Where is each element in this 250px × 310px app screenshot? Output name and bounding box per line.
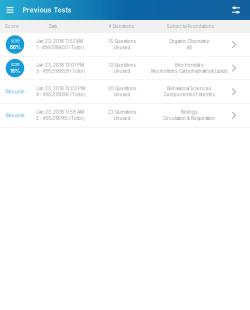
staticText: 16% — [10, 67, 20, 74]
staticText: 4 - #95319096 (Tutor) — [36, 92, 86, 97]
staticText: Unused — [113, 116, 130, 121]
staticText: Nucleotides, Carbohydrates & Lipids — [151, 68, 227, 74]
staticText: 86% — [9, 44, 20, 50]
staticText: 12 Questions — [108, 62, 135, 68]
staticText: Resume — [5, 112, 24, 118]
staticText: Circulation & Respiration — [163, 116, 215, 121]
staticText: 3 - #95318859 (Tutor) — [36, 68, 86, 74]
staticText: Organic Chemistry — [169, 39, 208, 44]
button[interactable]: Score — [0, 57, 250, 80]
staticText: Jan 23, 2018 12:03 PM — [36, 86, 85, 91]
button[interactable]: Resume — [0, 104, 250, 127]
staticText: Jan 23, 2018 11:57 AM — [36, 39, 83, 44]
staticText: Score — [10, 62, 19, 67]
staticText: 1 - #95318603 (Tutor) — [36, 45, 85, 50]
staticText: 2 - #95318745 (Tutor) — [36, 116, 85, 121]
staticText: Behavioral Sciences — [167, 86, 211, 91]
button[interactable]: Score — [0, 33, 250, 56]
staticText: Unused — [113, 92, 130, 97]
staticText: Unused — [113, 45, 130, 50]
staticText: Score — [10, 39, 19, 43]
staticText: Subjects/Foundations — [166, 24, 213, 29]
staticText: 22 Questions — [108, 110, 136, 115]
staticText: 15 Questions — [108, 39, 135, 44]
staticText: Score — [5, 24, 19, 29]
staticText: Date — [48, 24, 57, 29]
button[interactable]: Resume — [0, 80, 250, 103]
staticText: Resume — [5, 89, 24, 95]
staticText: Previous Tests — [22, 6, 71, 14]
staticText: All — [186, 45, 191, 50]
staticText: Jan 23, 2018 11:59 AM — [36, 110, 84, 115]
button[interactable]: Menu — [1, 0, 19, 20]
staticText: Components of Identity — [163, 92, 214, 97]
staticText: Unused — [113, 68, 130, 74]
staticText: Biology — [181, 110, 197, 115]
staticText: # Questions — [108, 24, 133, 29]
staticText: Jan 23, 2018 12:01 PM — [36, 62, 84, 68]
staticText: 20 Questions — [108, 86, 136, 91]
button[interactable]: Filter — [227, 0, 245, 20]
staticText: Biochemistry — [175, 62, 203, 68]
